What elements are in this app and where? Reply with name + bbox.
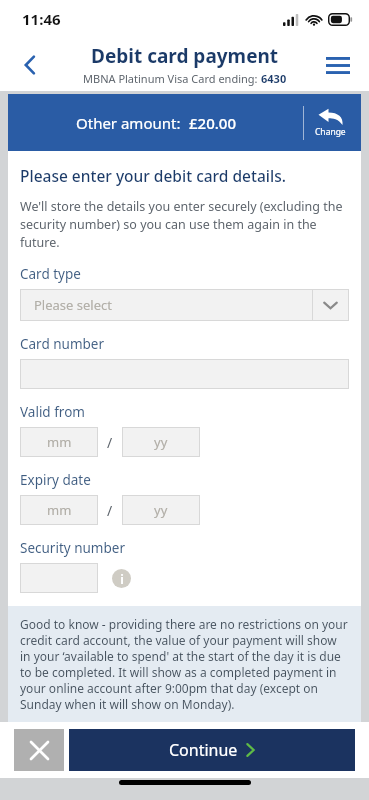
button[interactable]: Continue (69, 729, 355, 771)
button[interactable]: mm (20, 495, 98, 525)
button[interactable]: mm (20, 427, 98, 457)
staticText: 11:46 (22, 9, 61, 29)
staticText: Change (315, 126, 346, 138)
button[interactable]: Cancel (14, 729, 64, 771)
staticText: MBNA Platinum Visa Card ending: (83, 71, 261, 86)
staticText: Card type (20, 265, 81, 283)
button[interactable] (20, 359, 349, 389)
staticText: / (107, 433, 113, 452)
button[interactable]: Please select (20, 289, 349, 321)
staticText: Please select (34, 296, 312, 314)
button[interactable]: yy (122, 495, 200, 525)
staticText: Continue (169, 739, 238, 761)
staticText: / (107, 501, 113, 520)
staticText: Valid from (20, 403, 85, 421)
staticText: Debit card payment (91, 43, 279, 69)
button[interactable]: Back (10, 45, 50, 85)
staticText: Card number (20, 335, 105, 353)
button[interactable]: yy (122, 427, 200, 457)
staticText: mm (47, 433, 72, 451)
staticText: Security number (20, 539, 125, 557)
button[interactable] (20, 563, 98, 593)
staticText: yy (154, 433, 168, 451)
staticText: Expiry date (20, 471, 91, 489)
staticText: yy (154, 501, 168, 519)
button[interactable]: Change (306, 108, 354, 138)
staticText: We'll store the details you enter secure… (20, 198, 349, 251)
staticText: 6430 (261, 71, 287, 86)
staticText: mm (47, 501, 72, 519)
staticText: i (120, 571, 124, 587)
button[interactable]: Menu (317, 44, 359, 86)
staticText: £20.00 (189, 113, 236, 133)
staticText: Other amount: (76, 113, 189, 133)
staticText: Please enter your debit card details. (20, 165, 286, 186)
button[interactable]: Security number help (112, 569, 131, 588)
staticText: Good to know - providing there are no re… (20, 616, 349, 712)
